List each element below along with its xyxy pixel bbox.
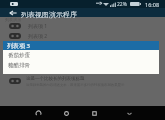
button[interactable]: 糖醋排骨: [3, 60, 159, 70]
staticText: 22%: [117, 1, 127, 8]
staticText: 列表项 1: [28, 23, 48, 30]
button[interactable]: Back: [33, 106, 43, 120]
staticText: 列表演示: [5, 17, 21, 22]
button[interactable]: Hide keyboard: [124, 106, 134, 120]
staticText: 16:08: [145, 1, 160, 8]
button[interactable]: Back: [6, 8, 20, 17]
staticText: 列表视图演示程序: [21, 10, 77, 19]
button[interactable]: Recents: [89, 106, 99, 120]
button[interactable]: Home: [61, 106, 71, 120]
staticText: 列表项 3: [7, 42, 30, 50]
button[interactable]: 列表项 1: [0, 21, 165, 31]
staticText: 糖醋排骨: [8, 62, 30, 69]
staticText: 番茄炒蛋: [8, 52, 30, 59]
staticText: 列表项 2: [28, 33, 48, 40]
button[interactable]: 这是一个比较长的列表项标题: [0, 73, 165, 89]
staticText: 这是一个比较长的列表项标题: [26, 76, 85, 82]
button[interactable]: 列表项 3: [3, 41, 159, 50]
button[interactable]: 番茄炒蛋: [3, 50, 159, 60]
staticText: 这是副标题的内容描述文本，用来展示多行的列表项布局效果显示: [26, 83, 125, 87]
button[interactable]: 列表项 2: [0, 31, 165, 41]
